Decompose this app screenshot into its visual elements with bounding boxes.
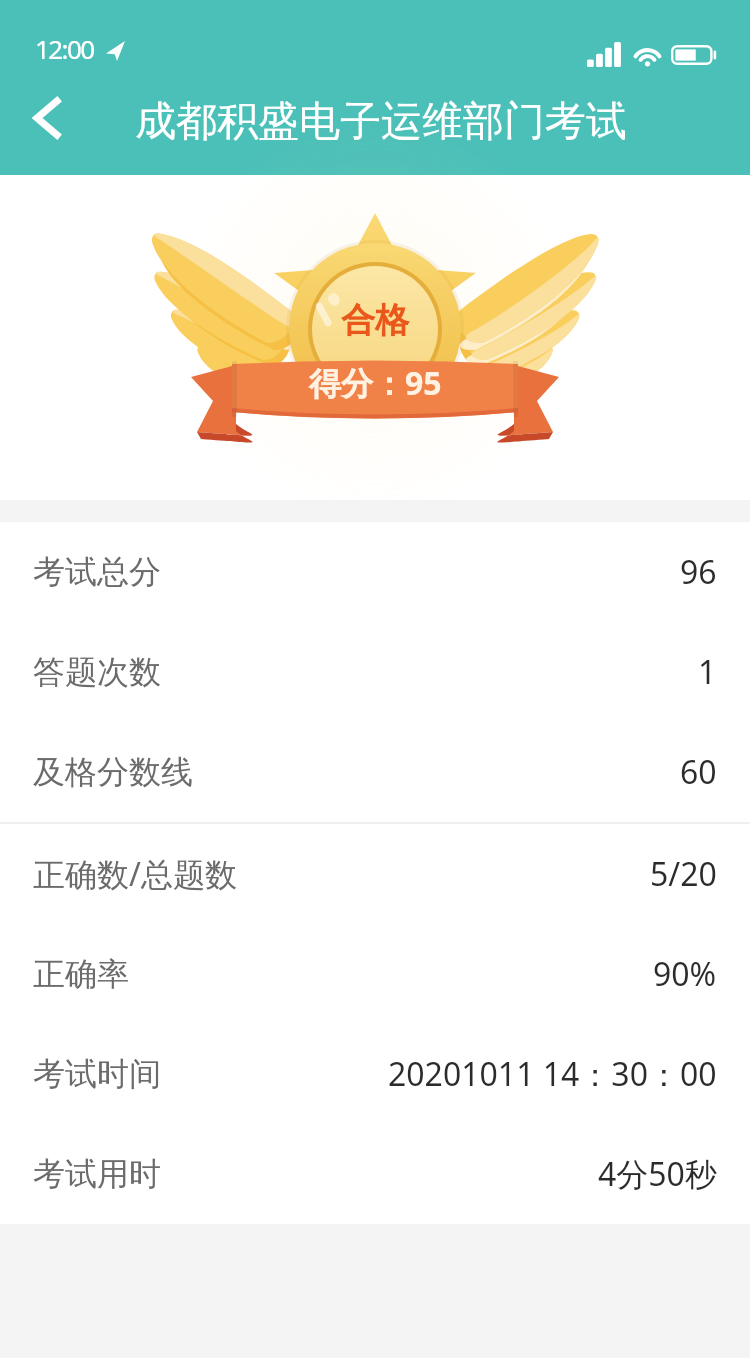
staticText: 20201011 14：30：00 bbox=[388, 1052, 717, 1096]
staticText: 5/20 bbox=[650, 852, 717, 896]
button[interactable]: 考试总分 bbox=[0, 522, 750, 622]
staticText: 考试用时 bbox=[33, 1154, 161, 1194]
staticText: 96 bbox=[680, 550, 717, 594]
button[interactable]: 正确率 bbox=[0, 924, 750, 1024]
staticText: 合格 bbox=[341, 299, 409, 342]
staticText: 正确数/总题数 bbox=[33, 852, 237, 896]
staticText: 12:00 bbox=[35, 31, 94, 66]
staticText: 60 bbox=[680, 750, 717, 794]
staticText: 得分：95 bbox=[309, 361, 442, 405]
staticText: 答题次数 bbox=[33, 652, 161, 692]
staticText: 及格分数线 bbox=[33, 752, 193, 792]
button[interactable]: 考试时间 bbox=[0, 1024, 750, 1124]
button[interactable]: Back bbox=[0, 88, 92, 175]
button[interactable]: 正确数/总题数 bbox=[0, 824, 750, 924]
button[interactable]: 答题次数 bbox=[0, 622, 750, 722]
staticText: 1 bbox=[698, 650, 717, 694]
staticText: 90% bbox=[653, 952, 717, 996]
staticText: 考试总分 bbox=[33, 552, 161, 592]
button[interactable]: 考试用时 bbox=[0, 1124, 750, 1224]
staticText: 成都积盛电子运维部门考试 bbox=[135, 96, 627, 148]
staticText: 考试时间 bbox=[33, 1054, 161, 1094]
staticText: 正确率 bbox=[33, 954, 129, 994]
button[interactable]: 及格分数线 bbox=[0, 722, 750, 822]
staticText: 4分50秒 bbox=[598, 1152, 717, 1196]
